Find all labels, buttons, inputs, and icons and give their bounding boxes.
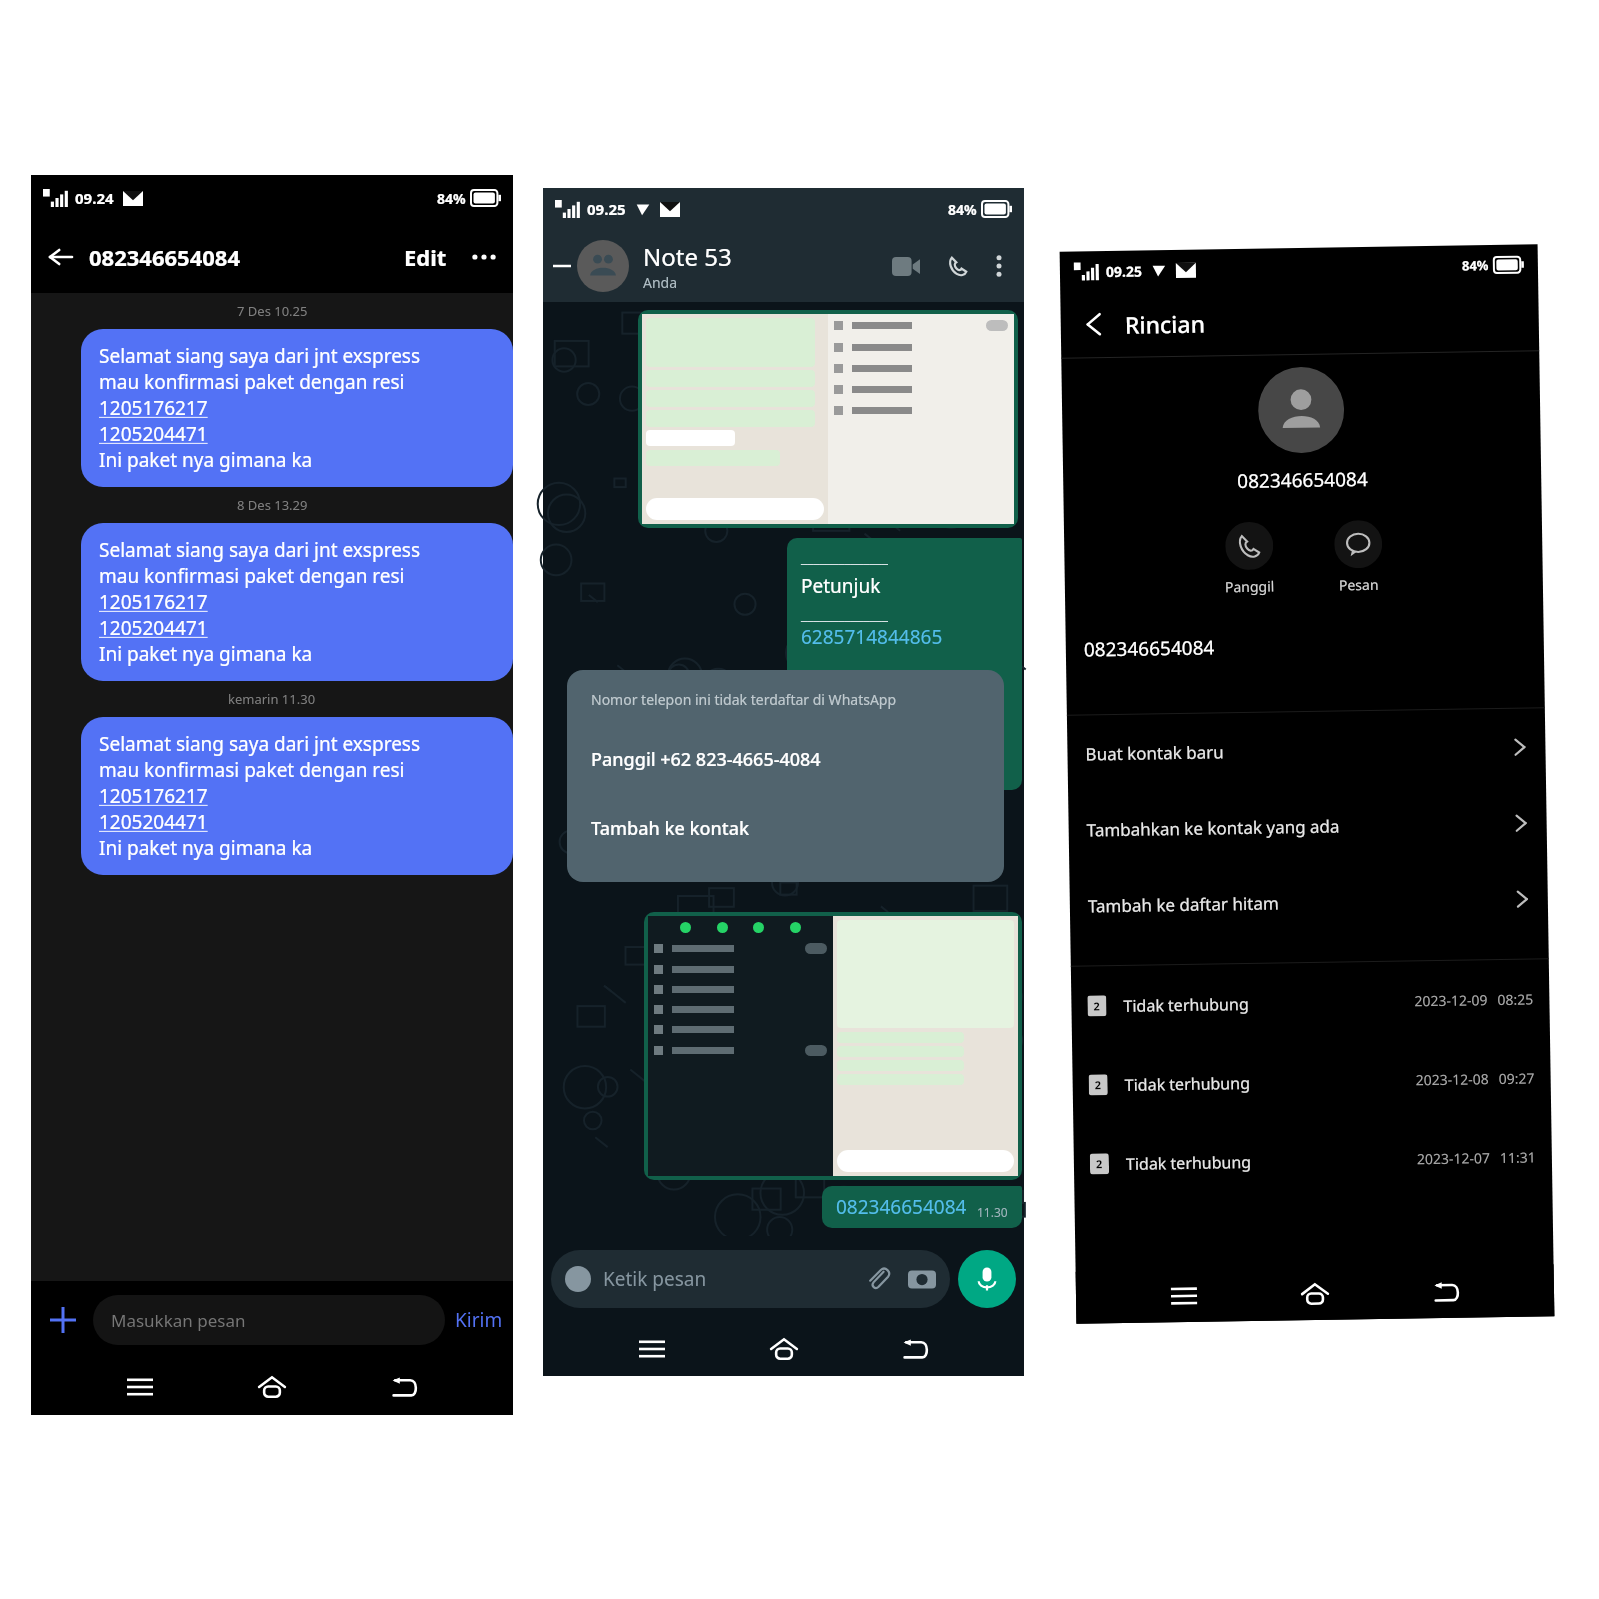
- staticText: Masukkan pesan: [111, 1309, 246, 1332]
- button[interactable]: Panggil +62 823-4665-4084: [591, 747, 1004, 772]
- button[interactable]: Buat kontak baru: [1067, 708, 1546, 792]
- staticText: Tidak terhubung: [1123, 993, 1250, 1017]
- staticText: Note 53: [643, 240, 732, 273]
- staticText: 082346654084: [1084, 634, 1215, 662]
- staticText: 1205204471: [99, 809, 208, 835]
- staticText: 09.24: [75, 188, 114, 208]
- other: Camera: [908, 1265, 936, 1293]
- staticText: Tidak terhubung: [1124, 1072, 1251, 1096]
- button[interactable]: Recent apps: [629, 1326, 675, 1372]
- staticText: 08:25: [1497, 989, 1534, 1009]
- staticText: 082346654084: [1237, 466, 1368, 494]
- button[interactable]: ______________: [787, 538, 1022, 790]
- staticText: Pesan: [1339, 575, 1379, 594]
- button[interactable]: Note 53: [643, 240, 886, 292]
- staticText: 1205204471: [99, 615, 208, 641]
- staticText: Edit: [404, 242, 447, 272]
- button[interactable]: Selamat siang saya dari jnt exspress: [81, 329, 513, 487]
- staticText: ______________: [801, 605, 889, 624]
- staticText: 2: [1095, 1077, 1102, 1092]
- staticText: Panggil +62 823-4665-4084: [591, 747, 821, 772]
- staticText: 1205176217: [99, 395, 208, 421]
- staticText: kemarin 11.30: [228, 690, 316, 708]
- staticText: Panggil: [1225, 576, 1275, 596]
- staticText: Rincian: [1124, 307, 1206, 340]
- button[interactable]: [644, 912, 1022, 1180]
- button[interactable]: Group photo: [577, 240, 629, 292]
- button[interactable]: More options: [984, 251, 1014, 281]
- staticText: mau konfirmasi paket dengan resi: [99, 757, 405, 783]
- staticText: Tidak terhubung: [1126, 1151, 1252, 1175]
- button[interactable]: Recent apps: [1161, 1273, 1207, 1319]
- button[interactable]: Tambah ke daftar hitam: [1069, 860, 1548, 944]
- staticText: Selamat siang saya dari jnt exspress: [99, 731, 421, 757]
- staticText: 7 Des 10.25: [237, 302, 308, 320]
- staticText: 2023-12-09: [1414, 990, 1489, 1010]
- button[interactable]: 082346654084: [822, 1186, 1022, 1228]
- button[interactable]: Home: [761, 1326, 807, 1372]
- staticText: 1205204471: [99, 421, 208, 447]
- button[interactable]: More options: [465, 238, 503, 276]
- staticText: 1205176217: [99, 783, 208, 809]
- staticText: Petunjuk: [801, 573, 881, 599]
- staticText: 2: [1096, 1156, 1103, 1171]
- button[interactable]: Back: [1423, 1268, 1469, 1315]
- button[interactable]: Attach: [41, 1298, 85, 1342]
- staticText: Ini paket nya gimana ka: [99, 447, 313, 473]
- button[interactable]: Tambahkan ke kontak yang ada: [1068, 784, 1547, 868]
- button[interactable]: Home: [249, 1364, 295, 1410]
- button[interactable]: Back: [381, 1364, 427, 1410]
- staticText: 11.30: [977, 1204, 1008, 1220]
- button[interactable]: Back: [549, 253, 575, 279]
- button[interactable]: 2: [1073, 1117, 1552, 1204]
- button[interactable]: 2: [1072, 1038, 1551, 1125]
- staticText: ______________: [801, 548, 889, 567]
- staticText: Tambahkan ke kontak yang ada: [1086, 814, 1340, 841]
- button[interactable]: Video call: [886, 246, 926, 286]
- button[interactable]: Selamat siang saya dari jnt exspress: [81, 523, 513, 681]
- button[interactable]: [638, 310, 1018, 528]
- staticText: 84%: [1462, 256, 1489, 274]
- button[interactable]: Selamat siang saya dari jnt exspress: [81, 717, 513, 875]
- staticText: Selamat siang saya dari jnt exspress: [99, 537, 421, 563]
- staticText: 84%: [948, 200, 977, 219]
- button[interactable]: Back: [892, 1326, 938, 1372]
- button[interactable]: Pesan: [1330, 516, 1387, 599]
- staticText: 09.25: [587, 199, 626, 219]
- staticText: mau konfirmasi paket dengan resi: [99, 369, 405, 395]
- staticText: 1205176217: [99, 589, 208, 615]
- button[interactable]: Back: [1074, 304, 1115, 345]
- staticText: 2023-12-08: [1415, 1069, 1490, 1089]
- staticText: Anda: [643, 273, 678, 292]
- staticText: 11:31: [1500, 1147, 1536, 1167]
- staticText: 082346654084: [836, 1194, 967, 1220]
- button[interactable]: Panggil: [1220, 517, 1279, 600]
- button[interactable]: 2: [1071, 959, 1550, 1046]
- staticText: Ketik pesan: [603, 1266, 707, 1292]
- button[interactable]: Voice call: [938, 246, 978, 286]
- other: Attach: [864, 1265, 892, 1293]
- staticText: Selamat siang saya dari jnt exspress: [99, 343, 421, 369]
- staticText: Tambah ke daftar hitam: [1088, 891, 1279, 917]
- staticText: mau konfirmasi paket dengan resi: [99, 563, 405, 589]
- staticText: Buat kontak baru: [1085, 740, 1225, 765]
- button[interactable]: Edit: [398, 242, 453, 272]
- button[interactable]: Back: [41, 237, 81, 277]
- staticText: 6285714844865: [801, 624, 943, 650]
- button[interactable]: Kirim: [455, 1307, 503, 1333]
- staticText: 2023-12-07: [1417, 1148, 1491, 1168]
- staticText: Kirim: [455, 1307, 503, 1333]
- button[interactable]: Ketik pesan: [551, 1250, 950, 1308]
- staticText: Tambah ke kontak: [591, 816, 750, 841]
- staticText: 2: [1093, 998, 1100, 1013]
- staticText: 09:27: [1498, 1068, 1535, 1088]
- staticText: Nomor telepon ini tidak terdaftar di Wha…: [591, 690, 897, 709]
- staticText: 09.25: [1106, 261, 1142, 281]
- button[interactable]: Recent apps: [117, 1364, 163, 1410]
- button[interactable]: Tambah ke kontak: [591, 816, 1004, 841]
- button[interactable]: Masukkan pesan: [93, 1295, 445, 1345]
- button[interactable]: Home: [1292, 1271, 1338, 1317]
- button[interactable]: Voice message: [958, 1250, 1016, 1308]
- staticText: Ini paket nya gimana ka: [99, 835, 313, 861]
- staticText: 8 Des 13.29: [237, 496, 308, 514]
